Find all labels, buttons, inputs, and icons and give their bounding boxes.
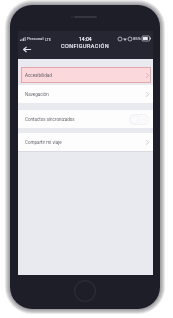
staticText: Navegación (25, 92, 49, 97)
staticText: Accesibilidad (25, 73, 52, 78)
staticText: 85% (133, 36, 141, 41)
staticText: 14:04 (79, 36, 92, 42)
staticText: Compartir mi viaje (25, 140, 62, 145)
button[interactable]: Accesibilidad (21, 67, 151, 83)
button[interactable]: Contactos sincronizados toggle (129, 114, 149, 125)
button[interactable]: Compartir mi viaje (18, 133, 153, 151)
button[interactable]: Navegación (18, 85, 153, 103)
button[interactable]: Contactos sincronizados (18, 110, 153, 128)
staticText: Contactos sincronizados (25, 117, 75, 122)
staticText: CONFIGURACIÓN (61, 43, 110, 49)
button[interactable]: Back (19, 42, 34, 57)
staticText: Personal (27, 36, 44, 41)
staticText: LTE (45, 37, 51, 41)
